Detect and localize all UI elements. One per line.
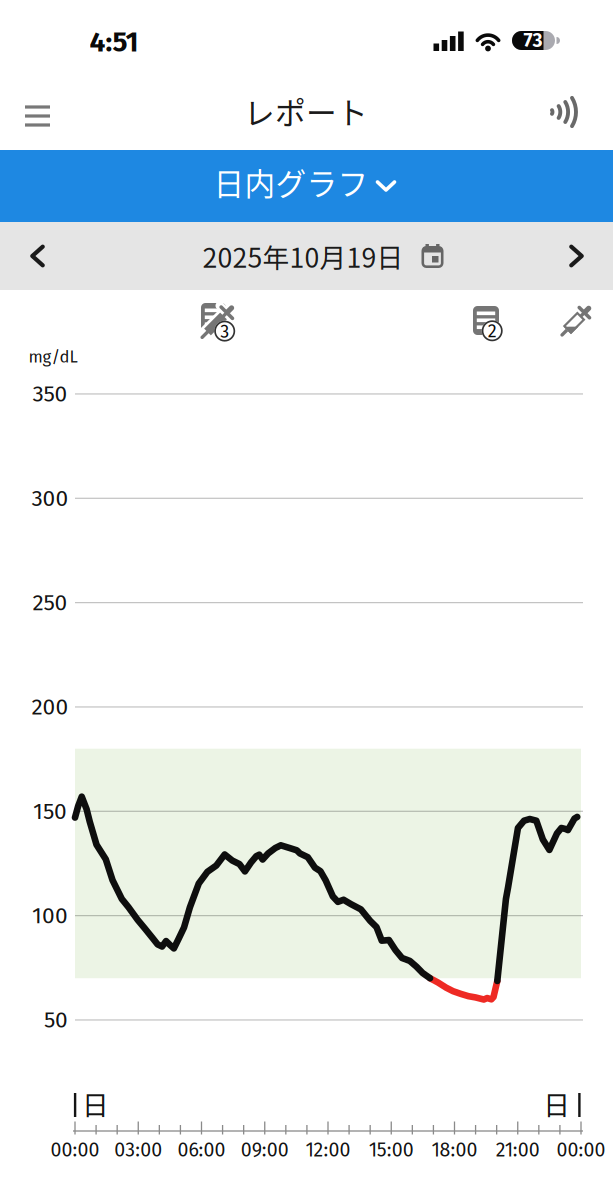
staticText: 日	[82, 1084, 109, 1123]
staticText: 12:00	[305, 1138, 350, 1162]
staticText: 06:00	[177, 1138, 225, 1162]
button[interactable]: Menu	[15, 95, 60, 137]
staticText: 200	[31, 693, 68, 721]
staticText: 15:00	[369, 1138, 414, 1162]
staticText: 09:00	[241, 1138, 289, 1162]
staticText: 73	[523, 29, 542, 52]
button[interactable]: Next day	[556, 232, 596, 279]
staticText: 4:51	[89, 25, 138, 59]
staticText: 日内グラフ	[213, 160, 368, 204]
staticText: mg/dL	[28, 347, 77, 367]
staticText: 2	[488, 320, 497, 342]
staticText: 150	[33, 798, 67, 825]
button[interactable]: Scan sensor	[534, 83, 586, 141]
staticText: レポート	[244, 89, 368, 133]
button[interactable]: Notes	[467, 301, 507, 345]
staticText: 250	[32, 589, 67, 616]
staticText: 03:00	[114, 1138, 162, 1162]
staticText: 3	[220, 321, 229, 342]
staticText: 350	[32, 380, 67, 408]
button[interactable]: Previous day	[17, 232, 57, 279]
staticText: 50	[44, 1006, 68, 1034]
staticText: 18:00	[431, 1138, 477, 1162]
staticText: 300	[31, 485, 68, 512]
button[interactable]: Insulin	[553, 299, 597, 343]
staticText: 100	[32, 902, 68, 929]
staticText: 日	[543, 1084, 570, 1123]
staticText: 00:00	[50, 1138, 99, 1162]
staticText: 00:00	[556, 1138, 605, 1162]
staticText: 21:00	[496, 1138, 540, 1162]
button[interactable]: 2025年10月19日	[202, 237, 443, 275]
button[interactable]: Insulin notes	[194, 299, 238, 345]
button[interactable]: 日内グラフ	[0, 150, 613, 222]
staticText: 2025年10月19日	[202, 237, 403, 275]
